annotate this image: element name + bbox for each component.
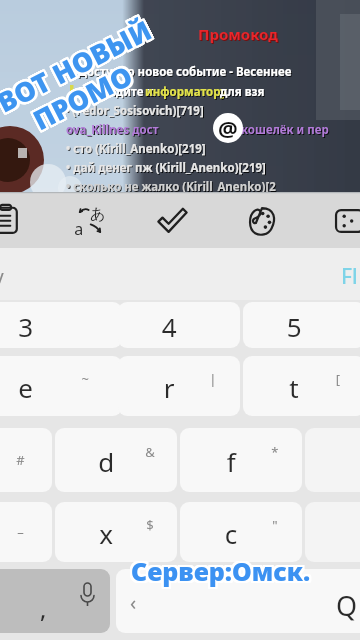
button[interactable] — [0, 302, 122, 348]
button[interactable] — [180, 428, 302, 492]
button[interactable]: Stickers — [334, 204, 360, 238]
button[interactable]: Clipboard — [0, 202, 24, 238]
button[interactable]: Theme — [245, 204, 279, 238]
button[interactable]: Handwriting — [155, 204, 189, 238]
button[interactable] — [55, 502, 177, 562]
button[interactable]: Translate — [73, 204, 107, 238]
button[interactable] — [55, 428, 177, 492]
button[interactable] — [180, 502, 302, 562]
button[interactable] — [0, 502, 52, 562]
button[interactable]: Comma and voice input — [0, 569, 110, 633]
button[interactable] — [243, 356, 360, 416]
button[interactable] — [243, 302, 360, 348]
button[interactable] — [0, 0, 360, 640]
button[interactable] — [0, 428, 52, 492]
button[interactable] — [118, 302, 240, 348]
button[interactable]: Space — [116, 569, 360, 633]
button[interactable] — [118, 356, 240, 416]
button[interactable] — [0, 356, 122, 416]
